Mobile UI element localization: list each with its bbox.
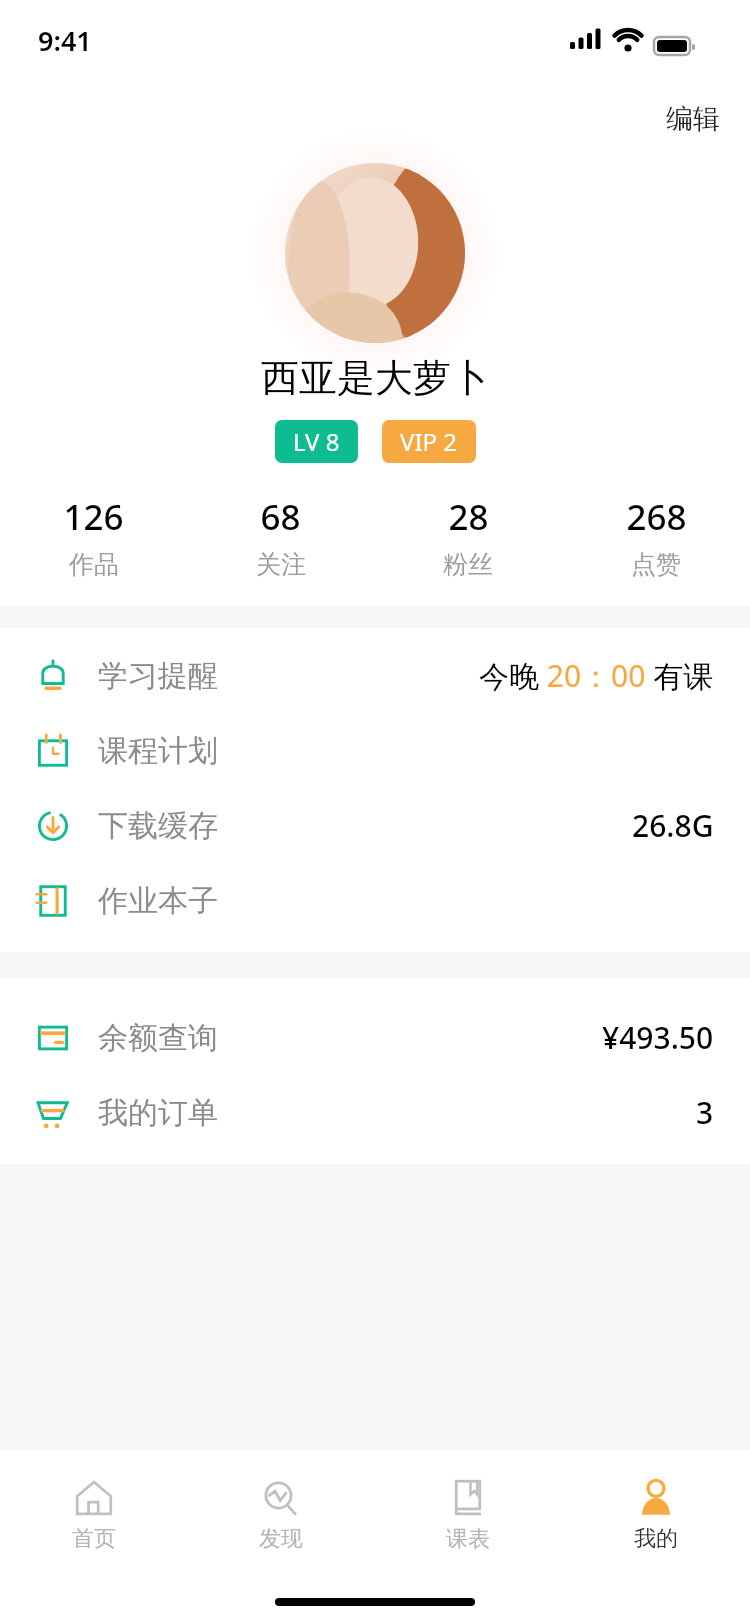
staticText: 首页 [72,1525,116,1553]
staticText: 126 [63,493,124,541]
button[interactable]: 我的 [562,1450,750,1580]
staticText: 编辑 [666,102,720,136]
button[interactable]: 发现 [187,1450,374,1580]
staticText: 3 [696,1092,714,1133]
button[interactable]: 课表 [374,1450,562,1580]
button[interactable]: LV 8 [275,420,358,463]
button[interactable]: 编辑 [636,92,750,146]
button[interactable]: 28 [374,493,562,580]
staticText: 粉丝 [443,549,493,580]
staticText: 作品 [69,549,119,580]
button[interactable]: 68 [187,493,374,580]
staticText: ¥493.50 [602,1017,714,1058]
staticText: 26.8G [632,805,714,846]
staticText: 点赞 [631,549,681,580]
button[interactable]: 学习提醒 [0,638,750,713]
staticText: 学习提醒 [98,657,218,695]
staticText: 课表 [446,1525,490,1553]
button[interactable]: 作业本子 [0,863,750,938]
staticText: 268 [626,493,687,541]
staticText: 今晚 20：00 有课 [479,655,714,696]
staticText: 西亚是大萝卜 [261,354,489,402]
button[interactable]: 首页 [0,1450,187,1580]
staticText: 余额查询 [98,1019,218,1057]
staticText: 发现 [259,1525,303,1553]
button[interactable]: 我的订单 [0,1075,750,1150]
staticText: VIP 2 [400,425,458,458]
button[interactable]: 268 [562,493,750,580]
button[interactable]: VIP 2 [382,420,476,463]
staticText: 我的 [634,1525,678,1553]
staticText: 课程计划 [98,732,218,770]
staticText: 关注 [256,549,306,580]
staticText: 68 [260,493,301,541]
button[interactable]: 126 [0,493,187,580]
staticText: 9:41 [38,22,92,59]
staticText: 28 [448,493,489,541]
button[interactable]: 余额查询 [0,1000,750,1075]
staticText: 我的订单 [98,1094,218,1132]
button[interactable]: 下载缓存 [0,788,750,863]
button[interactable]: 课程计划 [0,713,750,788]
staticText: LV 8 [293,425,340,458]
staticText: 下载缓存 [98,807,218,845]
staticText: 作业本子 [98,882,218,920]
